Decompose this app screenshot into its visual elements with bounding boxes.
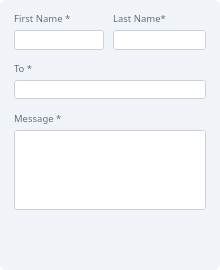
staticText: To * [14,62,33,75]
button[interactable]: Message input [14,130,206,210]
staticText: Last Name* [113,12,166,25]
button[interactable]: To input [14,80,206,99]
staticText: First Name * [14,12,71,25]
staticText: Message * [14,112,62,125]
button[interactable]: Last Name input [113,30,206,50]
button[interactable]: First Name input [14,30,104,50]
